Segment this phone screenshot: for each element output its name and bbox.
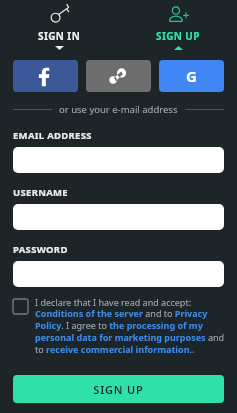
button[interactable] xyxy=(13,261,224,287)
staticText: SIGN UP xyxy=(93,382,144,397)
staticText: USERNAME xyxy=(13,186,68,199)
button[interactable]: Sign up with Google xyxy=(159,60,224,92)
button[interactable] xyxy=(13,204,224,230)
button[interactable]: SIGN IN xyxy=(0,0,118,50)
staticText: or use your e-mail address xyxy=(59,103,178,116)
staticText: EMAIL ADDRESS xyxy=(13,129,92,142)
staticText: SIGN UP xyxy=(156,29,200,43)
button[interactable]: Accept terms checkbox xyxy=(13,299,28,314)
button[interactable]: SIGN UP xyxy=(118,0,237,50)
staticText: G xyxy=(186,66,197,86)
button[interactable] xyxy=(13,147,224,173)
staticText: SIGN IN xyxy=(38,29,81,43)
button[interactable]: I declare that I have read and accept: C… xyxy=(35,296,226,356)
button[interactable]: SIGN UP xyxy=(13,375,224,403)
button[interactable]: Sign up with Facebook xyxy=(13,60,78,92)
staticText: PASSWORD xyxy=(13,243,68,256)
button[interactable]: Sign up with Steam xyxy=(86,60,151,92)
